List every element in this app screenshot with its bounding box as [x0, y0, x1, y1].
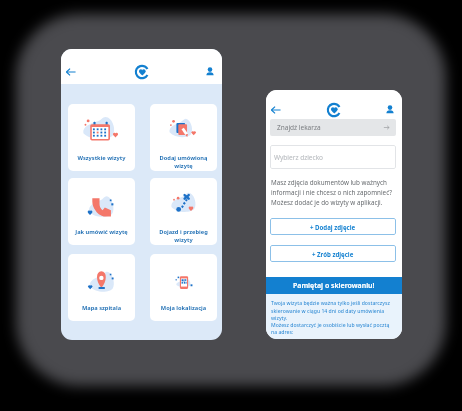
staticText: Dodaj umówioną wizytę	[150, 154, 217, 170]
staticText: + Dodaj zdjęcie	[310, 223, 356, 231]
button[interactable]: Back	[270, 104, 282, 116]
staticText: Masz zdjęcia dokumentów lub ważnych info…	[271, 178, 392, 207]
button[interactable]: Wszystkie wizyty	[68, 104, 135, 171]
button[interactable]: Account	[205, 67, 215, 77]
button[interactable]: Jak umówić wizytę	[68, 178, 135, 245]
staticText: + Zrób zdjęcie	[312, 250, 354, 258]
staticText: Mapa szpitala	[68, 304, 135, 312]
button[interactable]: Dodaj umówioną wizytę	[150, 104, 217, 171]
button[interactable]: Pamiętaj o skierowaniu!	[266, 277, 402, 294]
staticText: Znajdź lekarza	[277, 123, 321, 132]
staticText: Dojazd i przebieg wizyty	[150, 228, 217, 244]
staticText: Jak umówić wizytę	[68, 228, 135, 236]
button[interactable]: Account	[385, 105, 395, 115]
button[interactable]: Moja lokalizacja	[150, 254, 217, 321]
button[interactable]: Dojazd i przebieg wizyty	[150, 178, 217, 245]
staticText: Wybierz dziecko	[274, 153, 324, 162]
staticText: Moja lokalizacja	[150, 304, 217, 312]
button[interactable]: Back	[65, 66, 77, 78]
staticText: Pamiętaj o skierowaniu!	[293, 281, 375, 291]
button[interactable]: + Dodaj zdjęcie	[270, 218, 396, 235]
button[interactable]: Wybierz dziecko	[270, 145, 396, 169]
button[interactable]: Mapa szpitala	[68, 254, 135, 321]
staticText: Wszystkie wizyty	[68, 154, 135, 162]
button[interactable]: Znajdź lekarza	[270, 119, 396, 136]
button[interactable]: + Zrób zdjęcie	[270, 245, 396, 262]
staticText: Twoja wizyta będzie ważna tylko jeśli do…	[271, 300, 390, 335]
